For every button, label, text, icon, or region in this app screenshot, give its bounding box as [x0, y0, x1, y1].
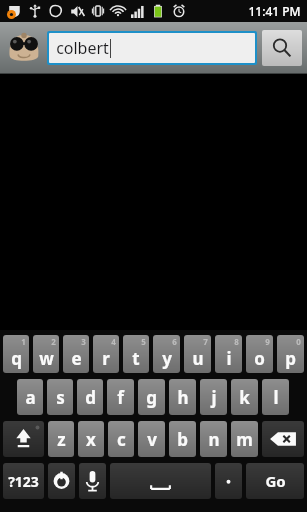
staticText: n [208, 428, 220, 451]
staticText: q [11, 347, 22, 370]
staticText: 11:41 PM [248, 3, 301, 19]
staticText: 0 [296, 336, 301, 347]
button[interactable]: 2 [33, 335, 59, 373]
button[interactable]: colbert [49, 33, 255, 63]
button[interactable]: a [17, 379, 43, 415]
button[interactable]: 7 [184, 335, 211, 373]
staticText: colbert [56, 37, 109, 59]
button[interactable]: ?123 [3, 463, 44, 499]
staticText: 7 [203, 336, 208, 347]
button[interactable]: Go [246, 463, 304, 499]
button[interactable]: Period [215, 463, 242, 499]
button[interactable]: 5 [123, 335, 149, 373]
button[interactable]: 9 [246, 335, 273, 373]
staticText: g [146, 386, 157, 409]
staticText: v [147, 428, 157, 451]
button[interactable]: Shift [3, 421, 44, 457]
staticText: c [117, 428, 126, 451]
staticText: w [39, 347, 54, 370]
button[interactable]: 3 [63, 335, 89, 373]
button[interactable]: Voice input [79, 463, 106, 499]
staticText: p [285, 347, 296, 370]
button[interactable]: 6 [153, 335, 180, 373]
button[interactable]: n [200, 421, 227, 457]
button[interactable]: 0 [277, 335, 304, 373]
button[interactable]: x [78, 421, 104, 457]
staticText: e [71, 347, 82, 370]
staticText: y [162, 347, 172, 370]
button[interactable]: s [47, 379, 73, 415]
button[interactable]: f [107, 379, 134, 415]
staticText: k [239, 386, 250, 409]
button[interactable]: App icon [5, 29, 43, 67]
button[interactable]: 8 [215, 335, 242, 373]
button[interactable]: b [169, 421, 196, 457]
button[interactable]: Search [262, 30, 302, 66]
button[interactable]: Settings [48, 463, 75, 499]
staticText: a [25, 386, 36, 409]
staticText: 1 [21, 336, 26, 347]
staticText: l [273, 386, 279, 409]
button[interactable]: c [108, 421, 134, 457]
button[interactable]: m [231, 421, 258, 457]
staticText: h [177, 386, 189, 409]
staticText: z [57, 428, 66, 451]
staticText: j [211, 386, 217, 409]
button[interactable]: 4 [93, 335, 119, 373]
staticText: 9 [265, 336, 270, 347]
staticText: 2 [51, 336, 56, 347]
staticText: s [56, 386, 65, 409]
button[interactable]: d [77, 379, 103, 415]
staticText: 5 [141, 336, 146, 347]
staticText: b [177, 428, 188, 451]
button[interactable]: j [200, 379, 227, 415]
button[interactable]: Delete [262, 421, 304, 457]
button[interactable]: l [262, 379, 289, 415]
button[interactable]: g [138, 379, 165, 415]
button[interactable]: h [169, 379, 196, 415]
staticText: o [254, 347, 265, 370]
button[interactable]: v [138, 421, 165, 457]
button[interactable]: z [48, 421, 74, 457]
staticText: 4 [111, 336, 116, 347]
staticText: ?123 [8, 472, 39, 491]
staticText: f [117, 386, 124, 409]
staticText: d [85, 386, 96, 409]
staticText: m [236, 428, 253, 451]
staticText: i [226, 347, 232, 370]
staticText: t [132, 347, 140, 370]
staticText: u [192, 347, 204, 370]
staticText: Go [265, 471, 286, 491]
button[interactable]: 1 [3, 335, 29, 373]
button[interactable]: k [231, 379, 258, 415]
staticText: r [102, 347, 110, 370]
button[interactable]: Space [110, 463, 211, 499]
staticText: 3 [81, 336, 86, 347]
staticText: 6 [172, 336, 177, 347]
staticText: 8 [234, 336, 239, 347]
staticText: x [86, 428, 96, 451]
